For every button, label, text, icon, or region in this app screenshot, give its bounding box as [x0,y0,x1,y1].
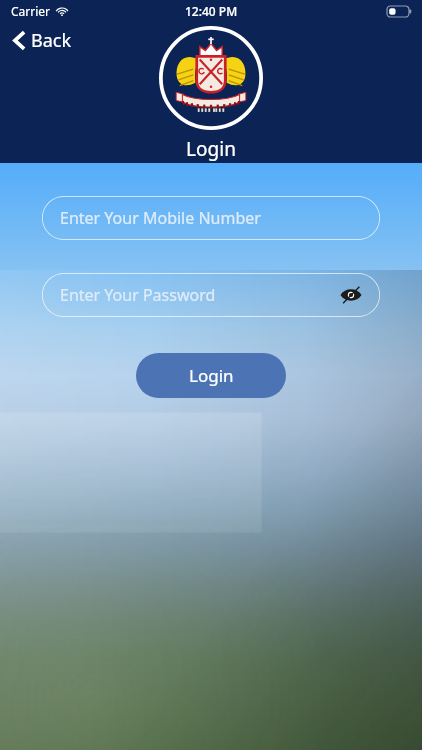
staticText: Back [31,28,72,53]
staticText: Enter Your Mobile Number [60,207,261,229]
button[interactable]: Back [8,24,78,57]
staticText: Login [189,364,234,387]
staticText: Enter Your Password [60,284,216,306]
staticText: 12:40 PM [185,3,238,19]
button[interactable]: Enter Your Password [42,273,380,317]
staticText: Login [186,136,236,162]
button[interactable]: Show password [334,278,368,312]
button[interactable]: Login [136,353,286,398]
button[interactable]: Enter Your Mobile Number [42,196,380,240]
staticText: Carrier [11,3,51,19]
